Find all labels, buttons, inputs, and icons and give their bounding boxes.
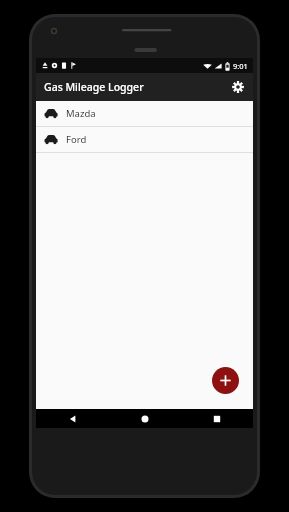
button[interactable]: Mazda — [36, 101, 253, 126]
button[interactable]: Recent apps — [181, 409, 253, 428]
staticText: Mazda — [66, 107, 96, 120]
button[interactable]: Home — [109, 409, 181, 428]
button[interactable]: Settings — [227, 76, 249, 98]
staticText: Ford — [66, 133, 87, 146]
button[interactable]: Add vehicle — [212, 367, 239, 394]
staticText: Gas Mileage Logger — [44, 80, 144, 94]
button[interactable]: Back — [36, 409, 109, 428]
button[interactable]: Ford — [36, 127, 253, 152]
staticText: 9:01 — [233, 61, 248, 71]
